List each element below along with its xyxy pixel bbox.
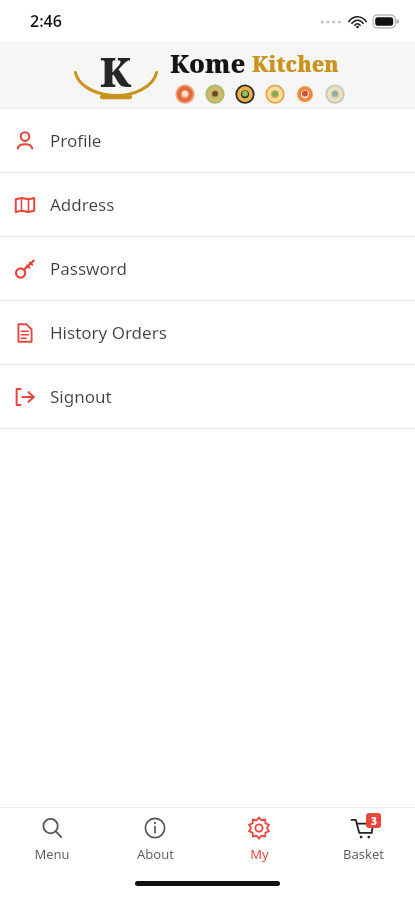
other: My account (247, 816, 271, 840)
staticText: Kome (170, 46, 246, 80)
other: About (143, 816, 167, 840)
button[interactable]: My account (207, 808, 311, 870)
button[interactable]: History Orders (0, 301, 415, 364)
button[interactable]: Profile (0, 109, 415, 172)
staticText: K (100, 44, 132, 98)
staticText: Basket (343, 845, 384, 863)
staticText: About (137, 845, 174, 863)
other: Basket, 3 items (351, 816, 375, 840)
staticText: 3 (371, 814, 377, 828)
staticText: Password (50, 257, 127, 280)
staticText: Profile (50, 129, 102, 152)
staticText: Kitchen (252, 50, 339, 79)
staticText: 2:46 (30, 10, 62, 32)
staticText: Address (50, 193, 115, 216)
button[interactable]: Address (0, 173, 415, 236)
button[interactable]: Password (0, 237, 415, 300)
button[interactable]: Menu (0, 808, 103, 870)
staticText: Menu (34, 845, 70, 863)
button[interactable]: Signout (0, 365, 415, 428)
other: Menu (40, 816, 64, 840)
staticText: My (250, 845, 269, 863)
button[interactable]: About (103, 808, 207, 870)
staticText: Signout (50, 385, 112, 408)
button[interactable]: Basket, 3 items (311, 808, 415, 870)
staticText: History Orders (50, 321, 167, 344)
